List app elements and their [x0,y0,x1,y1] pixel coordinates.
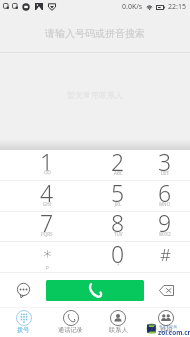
button[interactable]: Call [46,280,144,301]
staticText: zol.com.cn [158,328,190,337]
button[interactable]: ∗ [20,242,74,272]
staticText: MNO [159,201,171,207]
staticText: 1 [40,146,54,176]
button[interactable]: 0 [91,242,145,272]
button[interactable]: 拨号 [0,307,47,337]
staticText: 3 [158,146,172,176]
button[interactable]: 7 [20,211,74,241]
staticText: 请输入号码或拼音搜索 [45,27,145,40]
staticText: 联系人 [109,326,128,334]
button[interactable]: 3 [138,150,190,180]
staticText: 6 [158,177,172,207]
button[interactable]: 请输入号码或拼音搜索 [0,14,190,53]
staticText: DEF [161,170,170,176]
button[interactable]: 群组 [142,307,190,337]
button[interactable]: 5 [91,181,145,211]
button[interactable]: 联系人 [94,307,142,337]
button[interactable]: Messages [11,278,36,303]
staticText: ABC [114,170,123,176]
button[interactable]: 1 [20,150,74,180]
staticText: 暂无常用联系人 [67,90,123,100]
staticText: 4 [40,177,54,207]
staticText: 中关村在线 [159,325,177,330]
button[interactable]: 4 [20,181,74,211]
staticText: PQRS [41,231,53,237]
staticText: 7 [40,207,54,237]
button[interactable]: 通话记录 [47,307,94,337]
staticText: 22:15 [168,2,186,12]
staticText: TUV [114,231,123,237]
button[interactable]: 2 [91,150,145,180]
staticText: GHI [43,201,52,207]
staticText: + [117,262,120,268]
staticText: 5 [111,177,125,207]
button[interactable]: 9 [138,211,190,241]
staticText: 通话记录 [58,326,83,334]
staticText: JKL [115,201,122,207]
staticText: 0 [111,238,125,268]
staticText: 0.0K/s [122,2,143,12]
staticText: 2 [111,146,125,176]
staticText: 8 [111,207,125,237]
button[interactable]: 6 [138,181,190,211]
staticText: 9 [158,207,172,237]
button[interactable]: 8 [91,211,145,241]
staticText: WXYZ [159,231,171,237]
button[interactable]: # [138,242,190,272]
button[interactable]: Backspace [154,278,179,303]
staticText: ∗ [42,243,53,263]
staticText: P [46,265,49,271]
staticText: # [160,243,171,266]
staticText: 拨号 [17,326,30,334]
staticText: 群组 [160,326,173,334]
